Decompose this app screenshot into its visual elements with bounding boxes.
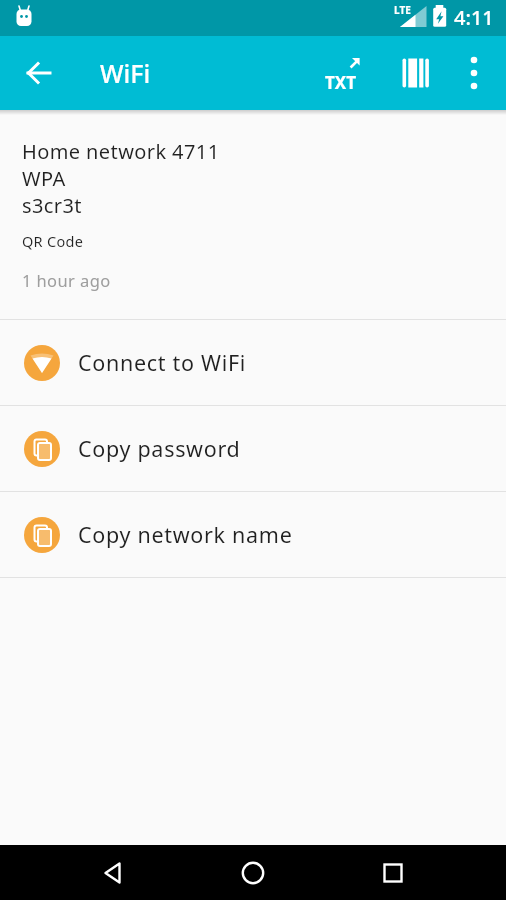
staticText: Home network 4711 WPA s3cr3t (22, 138, 220, 219)
button[interactable]: Copy password (0, 406, 506, 491)
button[interactable] (392, 50, 438, 96)
staticText: WiFi (100, 56, 151, 90)
button[interactable] (370, 845, 416, 900)
button[interactable]: Connect to WiFi (0, 320, 506, 405)
staticText: 4:11 (454, 4, 494, 31)
button[interactable] (90, 845, 136, 900)
button[interactable] (16, 50, 62, 96)
staticText: Copy network name (78, 520, 293, 549)
button[interactable]: Copy network name (0, 492, 506, 577)
button[interactable]: TXT (320, 50, 366, 96)
button[interactable] (230, 845, 276, 900)
staticText: LTE (394, 3, 411, 17)
staticText: Copy password (78, 434, 241, 463)
button[interactable] (451, 50, 497, 96)
staticText: TXT (325, 71, 357, 94)
staticText: QR Code (22, 231, 84, 251)
staticText: 1 hour ago (22, 269, 111, 291)
staticText: Connect to WiFi (78, 348, 247, 377)
